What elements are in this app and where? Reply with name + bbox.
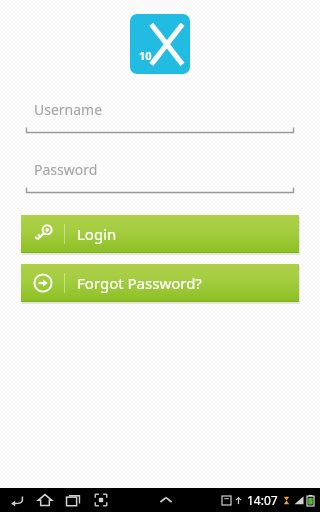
staticText: 10: [139, 48, 152, 63]
button[interactable]: Screenshot: [92, 491, 110, 509]
staticText: Forgot Password?: [77, 273, 202, 293]
button[interactable]: Username: [21, 100, 299, 134]
button[interactable]: Home: [36, 491, 54, 509]
staticText: Username: [34, 100, 103, 119]
staticText: Password: [34, 160, 98, 179]
button[interactable]: Forgot Password?: [21, 264, 299, 302]
button[interactable]: Back: [8, 491, 26, 509]
other: Forgot Password?: [30, 270, 56, 296]
other: Login: [30, 221, 56, 247]
button[interactable]: 14:07: [222, 492, 316, 508]
button[interactable]: Login: [21, 215, 299, 253]
button[interactable]: Password: [21, 160, 299, 194]
staticText: 14:07: [247, 492, 278, 508]
other: App logo: [130, 14, 190, 74]
staticText: Login: [77, 224, 117, 244]
button[interactable]: Recent apps: [64, 491, 82, 509]
button[interactable]: Show menu: [156, 490, 176, 510]
